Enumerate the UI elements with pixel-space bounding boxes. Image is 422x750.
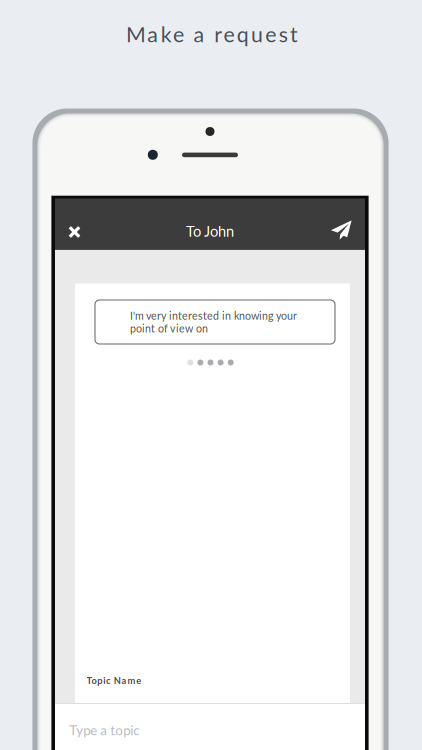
staticText: I'm very interested in knowing your poin… bbox=[130, 309, 297, 335]
staticText: Topic Name bbox=[87, 675, 141, 686]
staticText: To John bbox=[186, 222, 234, 240]
staticText: Type a topic bbox=[69, 722, 139, 738]
staticText: Make a request bbox=[126, 21, 298, 47]
button[interactable]: Send bbox=[322, 215, 361, 245]
button[interactable]: Close bbox=[55, 217, 94, 247]
